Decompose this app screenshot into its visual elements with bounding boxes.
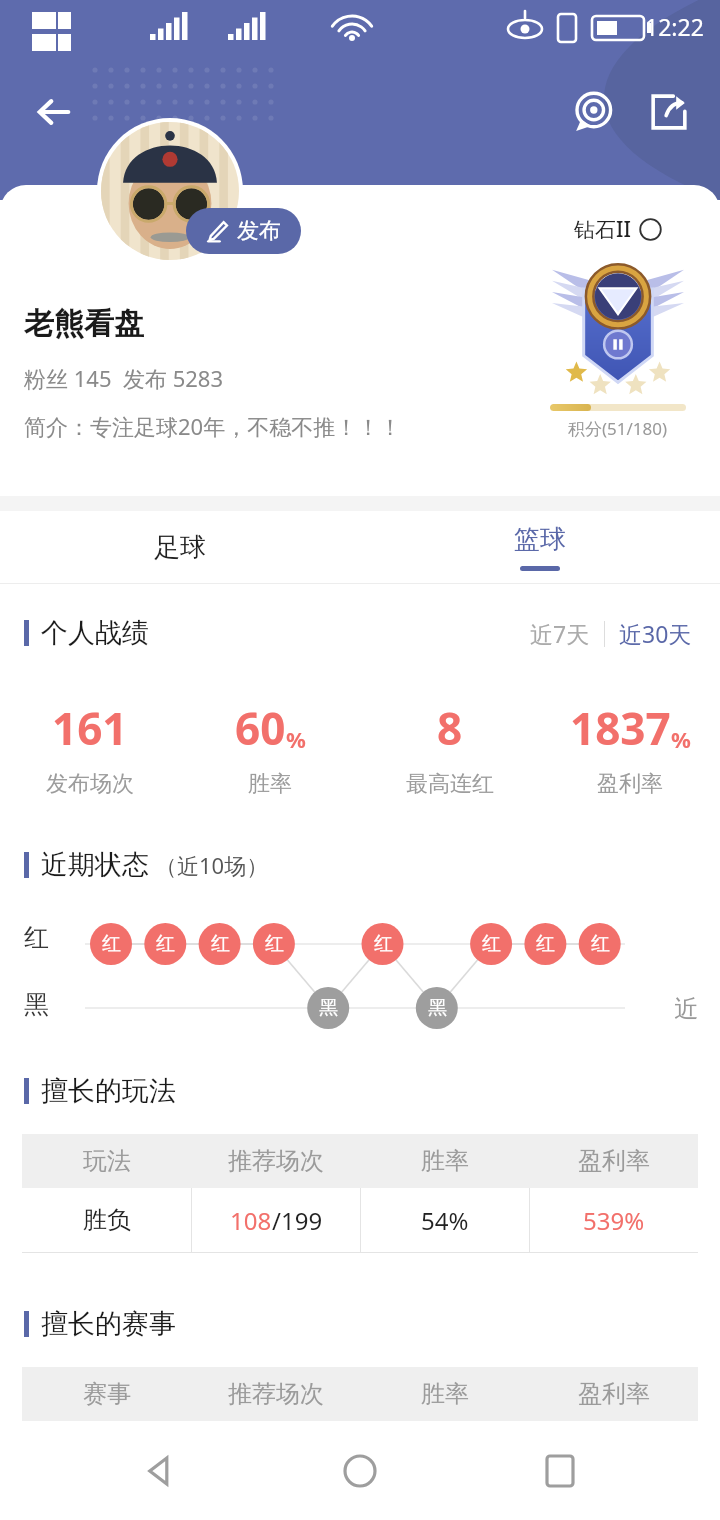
- staticText: 粉丝 145 发布 5283: [24, 363, 223, 393]
- button[interactable]: Back: [120, 1431, 200, 1511]
- staticText: 近7天: [530, 618, 590, 649]
- staticText: 近30天: [619, 618, 692, 649]
- staticText: 盈利率: [578, 1146, 650, 1176]
- staticText: %: [671, 724, 691, 754]
- staticText: 161: [52, 698, 128, 758]
- staticText: 赛事: [83, 1379, 131, 1409]
- staticText: 胜率: [421, 1146, 469, 1176]
- staticText: 推荐场次: [228, 1146, 324, 1176]
- staticText: 红: [265, 932, 284, 956]
- button[interactable]: 近7天: [526, 618, 594, 649]
- staticText: 盈利率: [597, 770, 663, 798]
- staticText: 胜负: [83, 1205, 131, 1235]
- staticText: 胜率: [248, 770, 292, 798]
- staticText: 老熊看盘: [24, 305, 144, 343]
- staticText: 发布场次: [46, 770, 134, 798]
- staticText: 60: [235, 698, 286, 758]
- staticText: 盈利率: [578, 1379, 650, 1409]
- staticText: 108: [230, 1204, 272, 1237]
- staticText: 8: [437, 698, 463, 758]
- staticText: 红: [24, 922, 49, 953]
- staticText: 红: [591, 932, 610, 956]
- staticText: （近10场）: [155, 850, 269, 880]
- button[interactable]: 发布: [186, 208, 301, 254]
- staticText: 玩法: [83, 1146, 131, 1176]
- staticText: 最高连红: [406, 770, 494, 798]
- staticText: 红: [536, 932, 555, 956]
- staticText: 积分(51/180): [568, 417, 668, 440]
- staticText: 54%: [421, 1204, 469, 1237]
- staticText: 红: [156, 932, 175, 956]
- staticText: 红: [102, 932, 121, 956]
- staticText: 钻石II: [574, 215, 631, 244]
- staticText: 个人战绩: [41, 616, 149, 650]
- staticText: 红: [482, 932, 501, 956]
- staticText: 近期状态: [41, 848, 149, 882]
- button[interactable]: Share: [640, 83, 698, 141]
- staticText: 擅长的玩法: [41, 1074, 176, 1108]
- staticText: 胜率: [421, 1379, 469, 1409]
- button[interactable]: 胜负: [22, 1188, 698, 1252]
- button[interactable]: 篮球: [360, 511, 720, 583]
- button[interactable]: Recents: [520, 1431, 600, 1511]
- button[interactable]: Help: [639, 218, 662, 241]
- staticText: 篮球: [514, 523, 566, 556]
- staticText: 足球: [154, 531, 206, 564]
- staticText: 黑: [319, 996, 338, 1020]
- button[interactable]: [101, 122, 239, 260]
- staticText: 黑: [24, 989, 49, 1020]
- button[interactable]: Home: [320, 1431, 400, 1511]
- staticText: 发布: [237, 217, 281, 245]
- staticText: 简介：专注足球20年，不稳不推！！！: [24, 411, 402, 441]
- staticText: %: [286, 724, 306, 754]
- button[interactable]: 近30天: [615, 618, 696, 649]
- button[interactable]: Back: [24, 82, 84, 142]
- staticText: 红: [211, 932, 230, 956]
- staticText: 539%: [583, 1204, 645, 1237]
- staticText: 擅长的赛事: [41, 1307, 176, 1341]
- staticText: 近: [674, 994, 698, 1024]
- staticText: 12:22: [645, 11, 704, 42]
- staticText: /199: [272, 1204, 323, 1237]
- button[interactable]: 足球: [0, 511, 360, 583]
- button[interactable]: Message: [564, 83, 622, 141]
- staticText: 推荐场次: [228, 1379, 324, 1409]
- staticText: 黑: [428, 996, 447, 1020]
- staticText: 红: [374, 932, 393, 956]
- staticText: 1837: [570, 698, 671, 758]
